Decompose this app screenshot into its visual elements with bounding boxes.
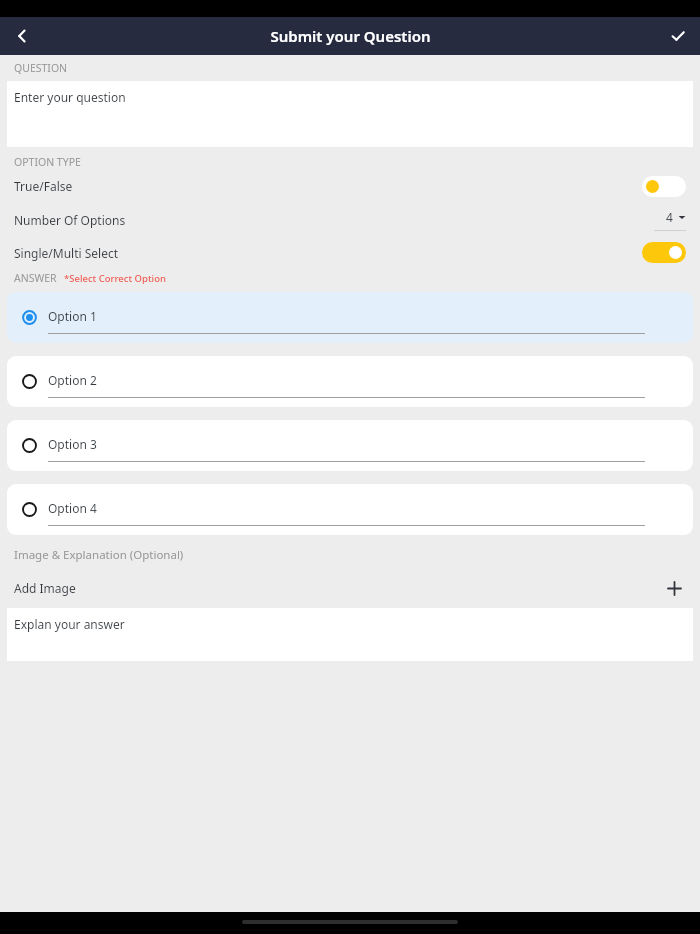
staticText: Image & Explanation (Optional) [14, 547, 184, 563]
staticText: True/False [14, 178, 73, 194]
button[interactable]: Explan your answer [7, 608, 693, 661]
staticText: Submit your Question [270, 26, 431, 46]
button[interactable]: Option 2 [7, 356, 693, 407]
staticText: OPTION TYPE [14, 155, 81, 169]
staticText: ANSWER [14, 271, 57, 285]
staticText: Single/Multi Select [14, 245, 119, 261]
staticText: Number Of Options [14, 212, 126, 228]
button[interactable]: Option 4 [7, 484, 693, 535]
staticText: Option 1 [48, 308, 97, 324]
staticText: Enter your question [14, 89, 126, 105]
button[interactable]: Back [0, 17, 44, 55]
staticText: Explan your answer [14, 616, 125, 632]
staticText: Add Image [14, 580, 76, 596]
staticText: Option 3 [48, 436, 97, 452]
staticText: Option 4 [48, 500, 97, 516]
staticText: QUESTION [14, 61, 68, 75]
button[interactable]: True/False [0, 169, 700, 203]
button[interactable]: Option 1 [7, 292, 693, 343]
button[interactable]: Submit [656, 17, 700, 55]
button[interactable]: Toggle off [642, 176, 686, 197]
staticText: *Select Correct Option [64, 272, 166, 285]
staticText: Option 2 [48, 372, 97, 388]
button[interactable]: Add Image [0, 574, 700, 602]
button[interactable]: Number Of Options [0, 203, 700, 236]
button[interactable]: 4 [650, 209, 686, 231]
button[interactable]: Toggle on [642, 242, 686, 263]
button[interactable]: Enter your question [7, 81, 693, 147]
button[interactable]: Option 3 [7, 420, 693, 471]
button[interactable]: Single/Multi Select [0, 236, 700, 269]
staticText: 4 [666, 209, 673, 225]
